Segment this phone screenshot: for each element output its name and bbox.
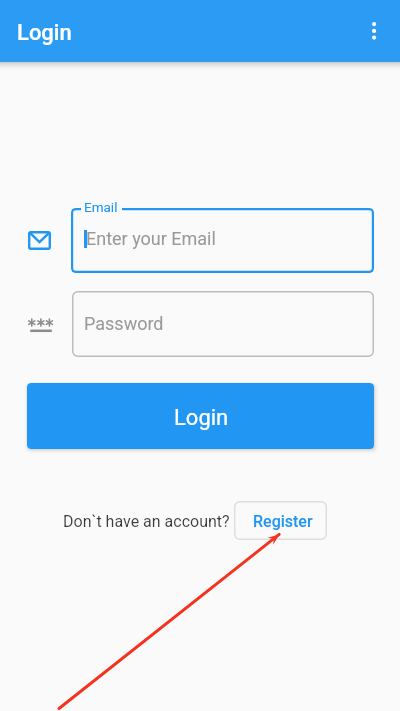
staticText: Register <box>253 512 313 531</box>
button[interactable]: Password <box>72 291 374 357</box>
button[interactable]: Login <box>27 383 374 449</box>
button[interactable]: More options <box>354 11 394 51</box>
staticText: Password <box>84 313 164 334</box>
button[interactable]: Register <box>234 501 327 540</box>
staticText: Login <box>174 405 229 431</box>
staticText: Login <box>17 20 72 46</box>
staticText: Enter your Email <box>86 228 216 249</box>
staticText: Don`t have an account? <box>63 512 230 531</box>
button[interactable]: Enter your Email <box>71 208 374 273</box>
staticText: Email <box>84 199 118 215</box>
